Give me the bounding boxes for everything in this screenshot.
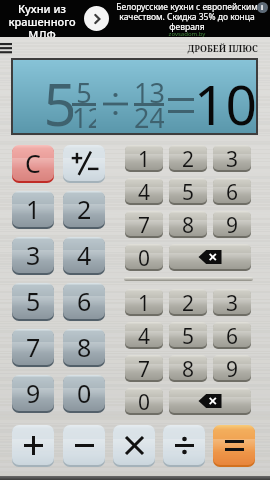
button[interactable]: 2 [169,145,207,172]
staticText: 7 [26,330,41,364]
button[interactable]: 5 [169,322,207,349]
button[interactable]: Multiply [113,425,155,467]
staticText: 6 [226,178,239,203]
staticText: 4 [77,238,92,272]
button[interactable]: Menu [0,38,20,56]
button[interactable]: 3 [12,237,54,275]
button[interactable]: 7 [12,329,54,367]
staticText: 2 [182,289,195,314]
staticText: zovsadom.by [113,30,261,38]
button[interactable]: 5 [13,60,256,133]
staticText: 12 [72,99,96,135]
button[interactable]: 9 [12,375,54,413]
button[interactable]: 7 [125,355,163,382]
staticText: 0 [77,376,92,410]
button[interactable]: 2 [169,289,207,316]
staticText: 9 [26,376,41,410]
button[interactable]: 6 [63,283,105,321]
button[interactable]: 6 [213,178,251,205]
button[interactable]: 8 [63,329,105,367]
button[interactable]: Кухни из крашенного МДФ [0,0,270,37]
staticText: 1 [26,192,41,226]
button[interactable]: 8 [169,211,207,238]
staticText: 1 [138,289,151,314]
staticText: 4 [138,322,151,347]
staticText: 0 [138,244,151,269]
staticText: 10 [194,66,257,139]
button[interactable]: Divide [163,425,205,467]
button[interactable]: 1 [125,289,163,316]
staticText: 8 [77,330,92,364]
button[interactable]: Minus [63,425,105,467]
button[interactable]: 4 [125,322,163,349]
staticText: 8 [182,211,195,236]
staticText: 9 [226,355,239,380]
staticText: 3 [226,145,239,170]
staticText: Белорусские кухни с европейским качество… [113,1,261,33]
button[interactable]: 3 [213,145,251,172]
staticText: 5 [182,178,195,203]
staticText: 5 [182,322,195,347]
staticText: 9 [226,211,239,236]
button[interactable]: Plus [12,425,54,467]
staticText: 2 [77,192,92,226]
staticText: 0 [138,388,151,413]
button[interactable]: 3 [213,289,251,316]
button[interactable]: 1 [125,145,163,172]
button[interactable]: C [12,145,54,183]
button[interactable]: 0 [125,388,163,415]
staticText: 5 [26,284,41,318]
button[interactable]: 7 [125,211,163,238]
staticText: 5 [43,64,73,136]
button[interactable]: Ad information [257,2,268,13]
staticText: 3 [226,289,239,314]
staticText: 7 [138,211,151,236]
staticText: i [261,3,264,13]
button[interactable]: 4 [125,178,163,205]
staticText: 6 [226,322,239,347]
staticText: 7 [138,355,151,380]
staticText: 24 [134,99,164,135]
staticText: Кухни из крашенного МДФ [2,1,82,37]
button[interactable]: 9 [213,355,251,382]
staticText: 8 [182,355,195,380]
button[interactable]: Equals [213,425,255,467]
staticText: 1 [138,145,151,170]
button[interactable]: Backspace [169,244,251,271]
button[interactable]: 9 [213,211,251,238]
staticText: 4 [138,178,151,203]
button[interactable]: 0 [63,375,105,413]
staticText: 13 [134,74,164,110]
button[interactable]: 2 [63,191,105,229]
staticText: 3 [26,238,41,272]
staticText: ДРОБЕЙ ПЛЮС [178,42,258,55]
staticText: 5 [76,74,92,110]
button[interactable]: 5 [169,178,207,205]
button[interactable]: 5 [12,283,54,321]
button[interactable]: 6 [213,322,251,349]
button[interactable]: 1 [12,191,54,229]
button[interactable]: 8 [169,355,207,382]
staticText: 6 [77,284,92,318]
staticText: 2 [182,145,195,170]
button[interactable]: 4 [63,237,105,275]
button[interactable]: 0 [125,244,163,271]
button[interactable]: Open advertisement [84,6,109,31]
staticText: C [25,146,41,180]
button[interactable]: Backspace [169,388,251,415]
button[interactable]: Plus minus [63,145,105,183]
